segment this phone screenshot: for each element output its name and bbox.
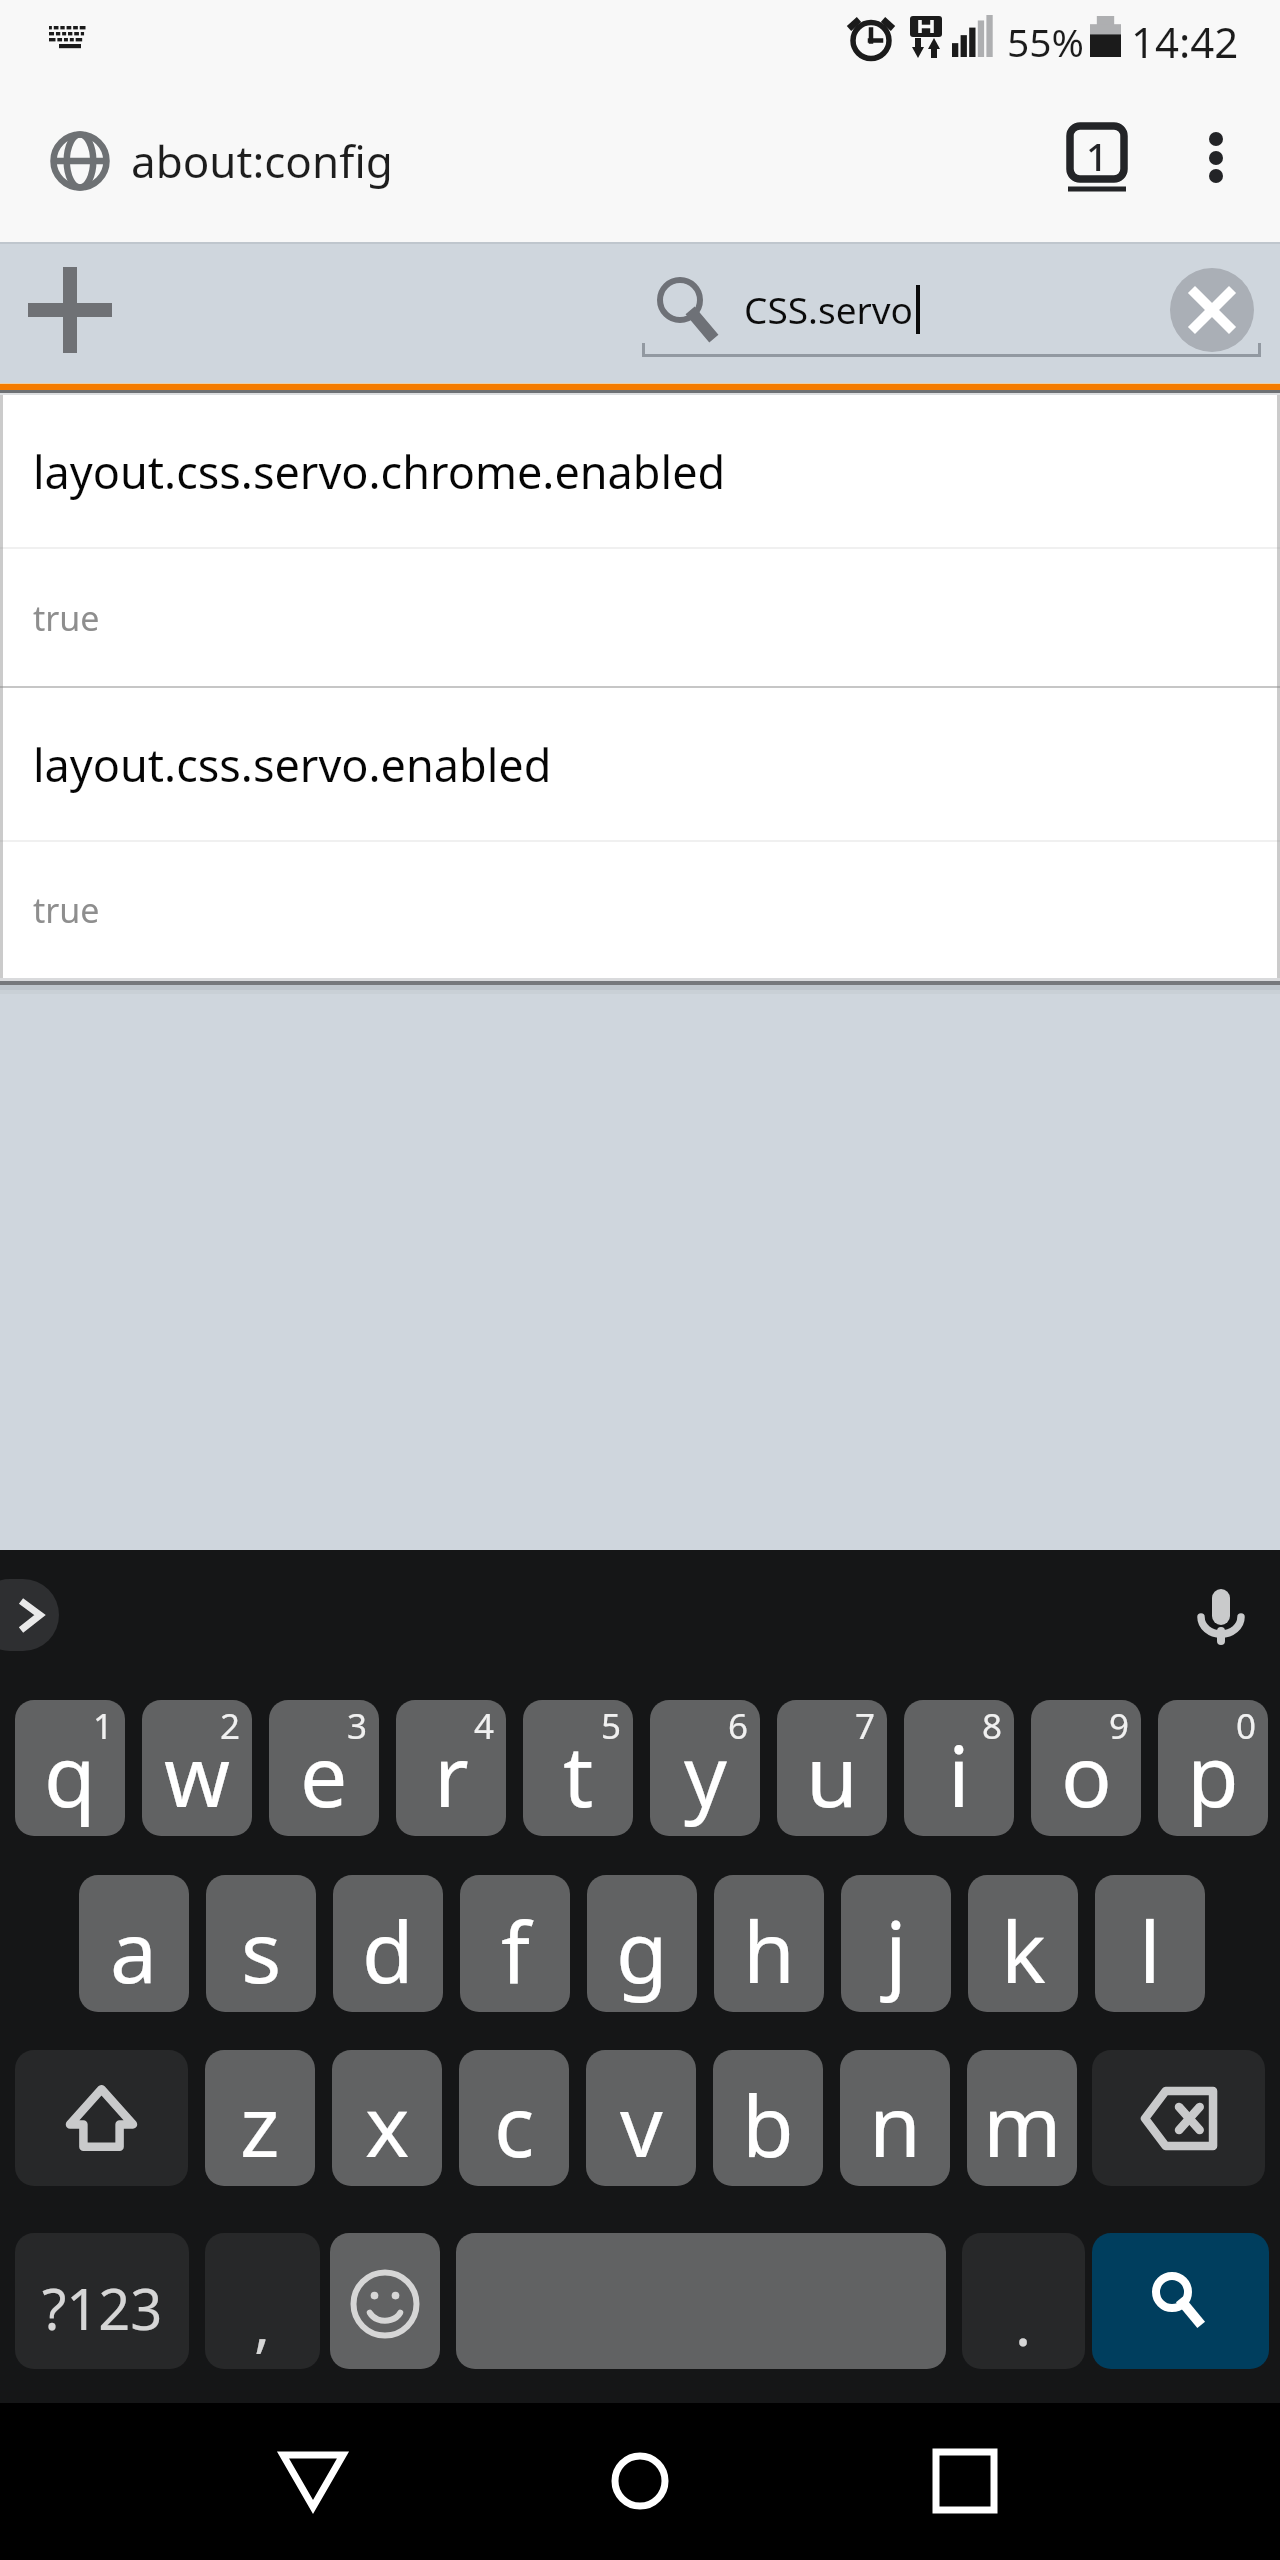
button[interactable]: b <box>713 2050 823 2186</box>
button[interactable]: More options <box>1166 118 1266 218</box>
button[interactable]: e <box>269 1700 379 1836</box>
button[interactable]: true <box>0 549 1280 686</box>
button[interactable]: u <box>777 1700 887 1836</box>
button[interactable]: New tab <box>10 250 130 370</box>
button[interactable]: t <box>523 1700 633 1836</box>
staticText: about:config <box>131 131 393 191</box>
staticText: j <box>885 1893 907 2007</box>
button[interactable]: g <box>587 1875 697 2012</box>
staticText: ?123 <box>42 2270 163 2346</box>
staticText: r <box>434 1717 469 1831</box>
staticText: 2 <box>220 1702 241 1750</box>
button[interactable]: c <box>459 2050 569 2186</box>
staticText: 4 <box>474 1702 495 1750</box>
staticText: 1 <box>93 1702 114 1750</box>
staticText: 8 <box>982 1702 1003 1750</box>
button[interactable]: o <box>1031 1700 1141 1836</box>
staticText: , <box>254 2282 271 2364</box>
button[interactable]: m <box>967 2050 1077 2186</box>
staticText: . <box>1015 2282 1032 2364</box>
staticText: CSS.servo <box>744 284 913 334</box>
button[interactable]: z <box>205 2050 315 2186</box>
button[interactable]: q <box>15 1700 125 1836</box>
staticText: layout.css.servo.enabled <box>33 734 552 795</box>
staticText: g <box>616 1893 668 2007</box>
button[interactable]: Shift <box>15 2050 188 2186</box>
staticText: p <box>1187 1717 1239 1831</box>
button[interactable]: Search <box>1092 2233 1269 2369</box>
staticText: c <box>494 2067 535 2181</box>
button[interactable]: ?123 <box>15 2233 189 2369</box>
staticText: l <box>1139 1893 1161 2007</box>
staticText: o <box>1061 1717 1112 1831</box>
staticText: m <box>983 2067 1062 2181</box>
button[interactable]: Expand suggestions <box>0 1579 59 1651</box>
staticText: h <box>743 1893 795 2007</box>
staticText: d <box>362 1893 414 2007</box>
button[interactable]: true <box>0 842 1280 978</box>
staticText: f <box>501 1893 530 2007</box>
button[interactable]: r <box>396 1700 506 1836</box>
button[interactable]: h <box>714 1875 824 2012</box>
staticText: v <box>620 2067 663 2181</box>
button[interactable]: , <box>205 2233 320 2369</box>
button[interactable]: p <box>1158 1700 1268 1836</box>
staticText: 0 <box>1236 1702 1257 1750</box>
button[interactable]: a <box>79 1875 189 2012</box>
staticText: k <box>1001 1893 1046 2007</box>
button[interactable]: . <box>962 2233 1085 2369</box>
staticText: true <box>33 595 100 641</box>
button[interactable]: Tabs <box>1043 99 1151 207</box>
staticText: a <box>110 1893 158 2007</box>
button[interactable]: Back <box>253 2425 373 2545</box>
staticText: 7 <box>855 1702 876 1750</box>
button[interactable]: i <box>904 1700 1014 1836</box>
button[interactable]: n <box>840 2050 950 2186</box>
button[interactable]: Clear search <box>1170 268 1254 352</box>
button[interactable]: j <box>841 1875 951 2012</box>
button[interactable]: Voice input <box>1186 1575 1256 1645</box>
staticText: s <box>241 1893 282 2007</box>
staticText: e <box>300 1717 348 1831</box>
staticText: b <box>742 2067 794 2181</box>
button[interactable]: y <box>650 1700 760 1836</box>
staticText: y <box>684 1717 727 1831</box>
button[interactable]: f <box>460 1875 570 2012</box>
button[interactable]: Home <box>580 2421 700 2541</box>
staticText: 3 <box>347 1702 368 1750</box>
button[interactable]: Space <box>456 2233 946 2369</box>
staticText: w <box>164 1717 231 1831</box>
button[interactable]: l <box>1095 1875 1205 2012</box>
staticText: i <box>948 1717 970 1831</box>
button[interactable]: w <box>142 1700 252 1836</box>
staticText: x <box>365 2067 410 2181</box>
button[interactable]: d <box>333 1875 443 2012</box>
staticText: true <box>33 887 100 933</box>
button[interactable]: about:config <box>0 80 393 242</box>
staticText: 55% <box>1007 15 1085 68</box>
button[interactable]: Backspace <box>1092 2050 1265 2186</box>
staticText: 14:42 <box>1131 13 1239 70</box>
button[interactable]: Emoji <box>330 2233 440 2369</box>
staticText: 9 <box>1109 1702 1130 1750</box>
staticText: q <box>44 1717 96 1831</box>
staticText: layout.css.servo.chrome.enabled <box>33 441 726 502</box>
button[interactable]: Recents <box>905 2421 1025 2541</box>
button[interactable]: layout.css.servo.enabled <box>0 688 1280 840</box>
staticText: n <box>869 2067 921 2181</box>
button[interactable]: s <box>206 1875 316 2012</box>
staticText: z <box>240 2067 280 2181</box>
staticText: 6 <box>728 1702 749 1750</box>
staticText: 1 <box>1086 130 1108 182</box>
staticText: t <box>563 1717 594 1831</box>
button[interactable]: layout.css.servo.chrome.enabled <box>0 395 1280 547</box>
button[interactable]: x <box>332 2050 442 2186</box>
staticText: 5 <box>601 1702 622 1750</box>
button[interactable]: v <box>586 2050 696 2186</box>
staticText: u <box>806 1717 858 1831</box>
button[interactable]: k <box>968 1875 1078 2012</box>
